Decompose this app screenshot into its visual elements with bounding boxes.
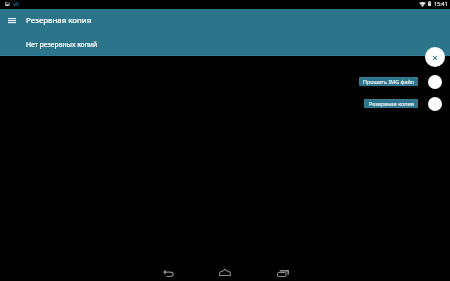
staticText: Резервная копия (369, 100, 414, 107)
button[interactable]: Flash IMG file (428, 75, 442, 89)
staticText: Прошить IMG файл (363, 78, 414, 85)
button[interactable]: Резервная копия (365, 100, 417, 107)
button[interactable]: Open navigation drawer (2, 12, 22, 30)
button[interactable]: Прошить IMG файл (360, 78, 417, 85)
button[interactable]: Home (212, 261, 238, 281)
button[interactable]: Back (155, 261, 181, 281)
button[interactable]: Close menu (425, 47, 445, 67)
staticText: 15:41 (434, 0, 448, 7)
staticText: Резервная копия (26, 15, 92, 26)
button[interactable]: Backup (428, 97, 442, 111)
staticText: Нет резервных копий (26, 40, 98, 49)
button[interactable]: Recent apps (270, 261, 296, 281)
